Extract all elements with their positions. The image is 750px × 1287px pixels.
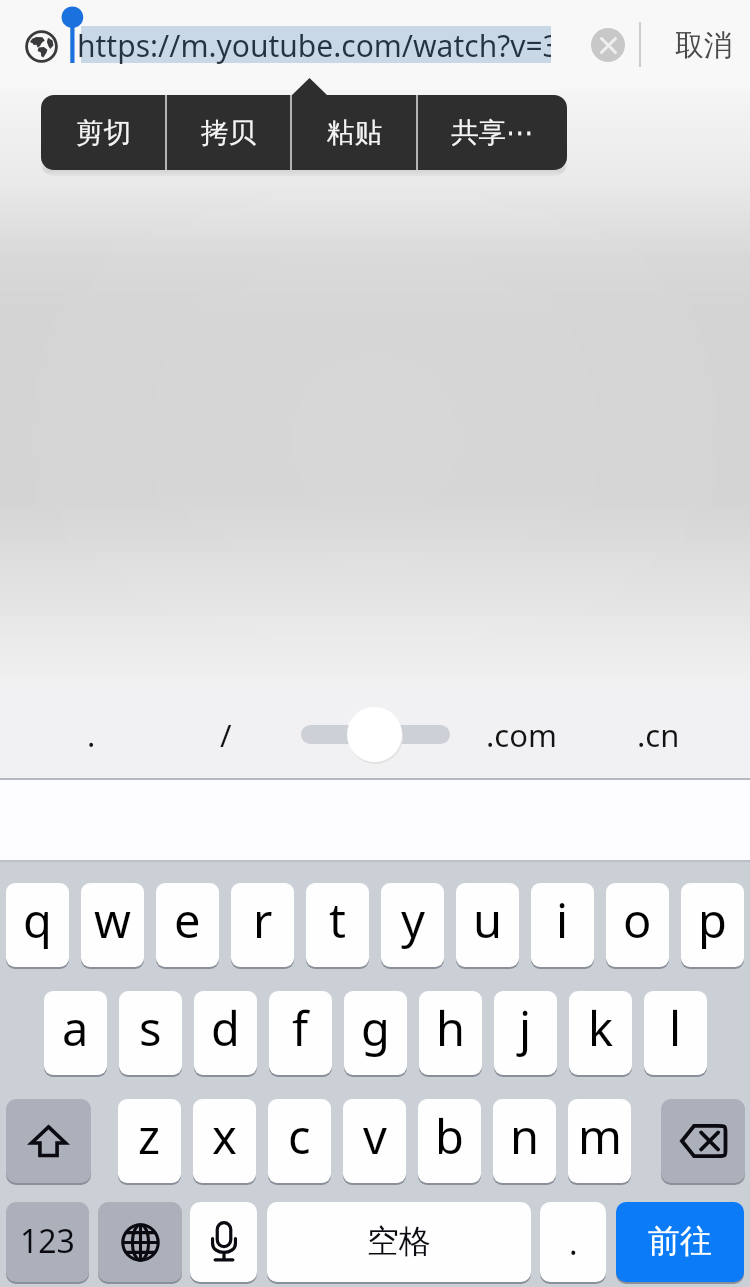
button[interactable]: / (200, 705, 252, 771)
staticText: b (435, 1104, 464, 1168)
staticText: k (588, 996, 614, 1060)
button[interactable]: e (156, 883, 219, 967)
staticText: 空格 (367, 1221, 431, 1261)
button[interactable]: o (606, 883, 669, 967)
staticText: z (138, 1104, 161, 1168)
button[interactable]: l (644, 991, 707, 1075)
button[interactable]: y (381, 883, 444, 967)
staticText: p (698, 888, 727, 952)
button[interactable]: j (494, 991, 557, 1075)
button[interactable]: Clear text (591, 28, 625, 62)
button[interactable]: 123 (6, 1202, 89, 1282)
button[interactable]: f (269, 991, 332, 1075)
staticText: 粘贴 (327, 116, 382, 151)
button[interactable]: u (456, 883, 519, 967)
staticText: l (669, 996, 682, 1060)
staticText: o (623, 888, 652, 952)
button[interactable]: .com (469, 705, 573, 771)
button[interactable]: p (681, 883, 744, 967)
button[interactable]: m (568, 1099, 631, 1183)
button[interactable]: g (344, 991, 407, 1075)
button[interactable]: 剪切 (41, 95, 165, 170)
button[interactable]: v (343, 1099, 406, 1183)
button[interactable]: i (531, 883, 594, 967)
staticText: h (436, 996, 466, 1060)
staticText: 剪切 (76, 116, 131, 151)
button[interactable]: q (6, 883, 69, 967)
button[interactable]: b (418, 1099, 481, 1183)
staticText: q (23, 888, 52, 952)
staticText: 前往 (648, 1221, 712, 1261)
button[interactable]: r (231, 883, 294, 967)
button[interactable]: w (81, 883, 144, 967)
staticText: t (329, 888, 346, 952)
button[interactable]: . (540, 1202, 606, 1282)
button[interactable]: h (419, 991, 482, 1075)
button[interactable]: a (44, 991, 107, 1075)
staticText: . (87, 714, 96, 756)
button[interactable]: .cn (619, 705, 697, 771)
staticText: v (363, 1104, 387, 1168)
staticText: w (94, 888, 131, 952)
staticText: i (556, 888, 569, 952)
button[interactable]: 前往 (616, 1202, 744, 1282)
staticText: 共享⋯ (451, 116, 534, 151)
button[interactable]: Backspace (661, 1099, 745, 1183)
staticText: r (253, 888, 273, 952)
button[interactable]: Shift (6, 1099, 91, 1183)
button[interactable]: s (119, 991, 182, 1075)
button[interactable]: 共享⋯ (418, 95, 567, 170)
button[interactable]: n (493, 1099, 556, 1183)
staticText: 123 (20, 1219, 75, 1263)
button[interactable]: 拷贝 (167, 95, 290, 170)
staticText: a (62, 996, 89, 1060)
button[interactable]: https://m.youtube.com/watch?v=3 (77, 0, 551, 90)
button[interactable]: k (569, 991, 632, 1075)
staticText: .cn (637, 714, 680, 756)
staticText: s (139, 996, 162, 1060)
button[interactable]: c (268, 1099, 331, 1183)
staticText: m (578, 1104, 622, 1168)
staticText: e (174, 888, 201, 952)
button[interactable]: . (65, 705, 118, 771)
button[interactable]: 粘贴 (292, 95, 416, 170)
button[interactable]: t (306, 883, 369, 967)
staticText: .com (486, 714, 557, 756)
button[interactable]: Voice input (190, 1202, 257, 1282)
staticText: c (288, 1104, 311, 1168)
staticText: f (292, 996, 309, 1060)
staticText: . (569, 1221, 578, 1265)
staticText: / (220, 714, 232, 756)
button[interactable]: Switch keyboard (98, 1202, 182, 1282)
staticText: u (473, 888, 503, 952)
staticText: 取消 (675, 27, 733, 64)
staticText: x (212, 1104, 237, 1168)
staticText: n (510, 1104, 540, 1168)
staticText: y (401, 888, 425, 952)
staticText: https://m.youtube.com/watch?v=3 (77, 25, 551, 66)
button[interactable]: 空格 (267, 1202, 531, 1282)
button[interactable]: Site info (25, 30, 58, 63)
button[interactable]: x (193, 1099, 256, 1183)
staticText: j (519, 996, 532, 1060)
staticText: g (361, 996, 390, 1060)
staticText: d (211, 996, 240, 1060)
button[interactable]: d (194, 991, 257, 1075)
button[interactable]: 取消 (663, 18, 745, 72)
button[interactable]: z (118, 1099, 181, 1183)
button[interactable]: Scrub handle (347, 707, 402, 762)
staticText: 拷贝 (201, 116, 256, 151)
